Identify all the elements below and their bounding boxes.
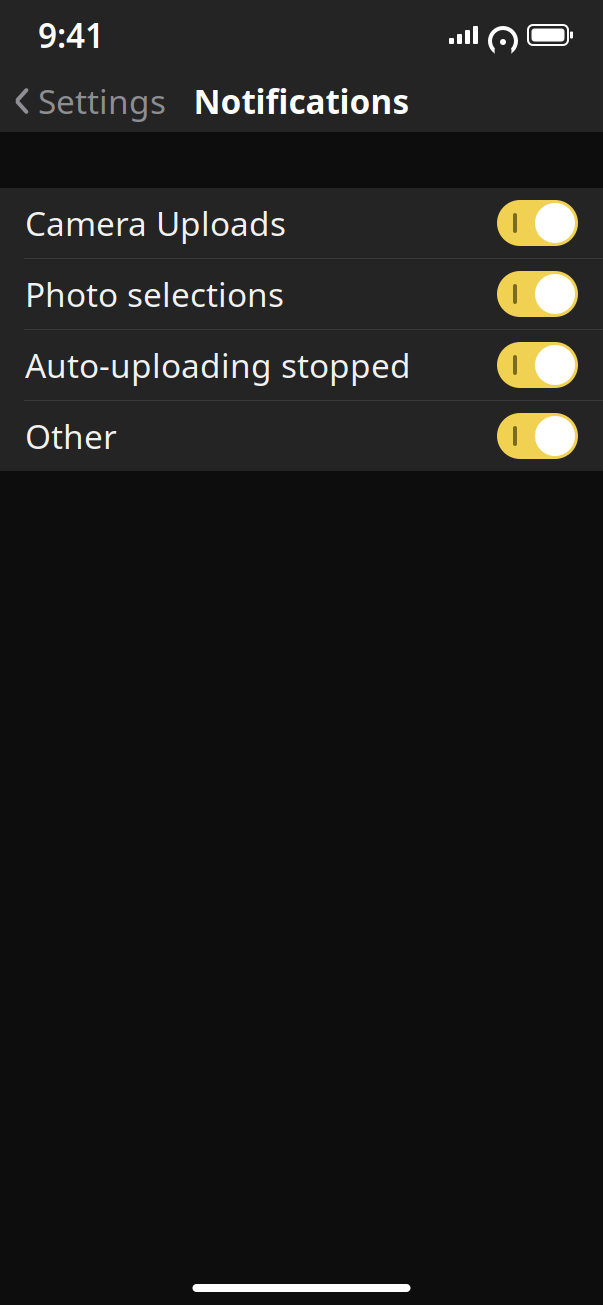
staticText: 9:41 [38,13,104,57]
button[interactable]: Settings [0,71,166,131]
staticText: Camera Uploads [25,201,286,245]
button[interactable]: Other [0,401,603,471]
staticText: Other [25,414,117,458]
staticText: Notifications [193,79,409,123]
button[interactable]: Camera Uploads [0,188,603,258]
button[interactable]: Photo selections [0,259,603,329]
staticText: Auto-uploading stopped [25,343,411,387]
staticText: Settings [38,79,166,123]
button[interactable]: Auto-uploading stopped [0,330,603,400]
staticText: Photo selections [25,272,284,316]
